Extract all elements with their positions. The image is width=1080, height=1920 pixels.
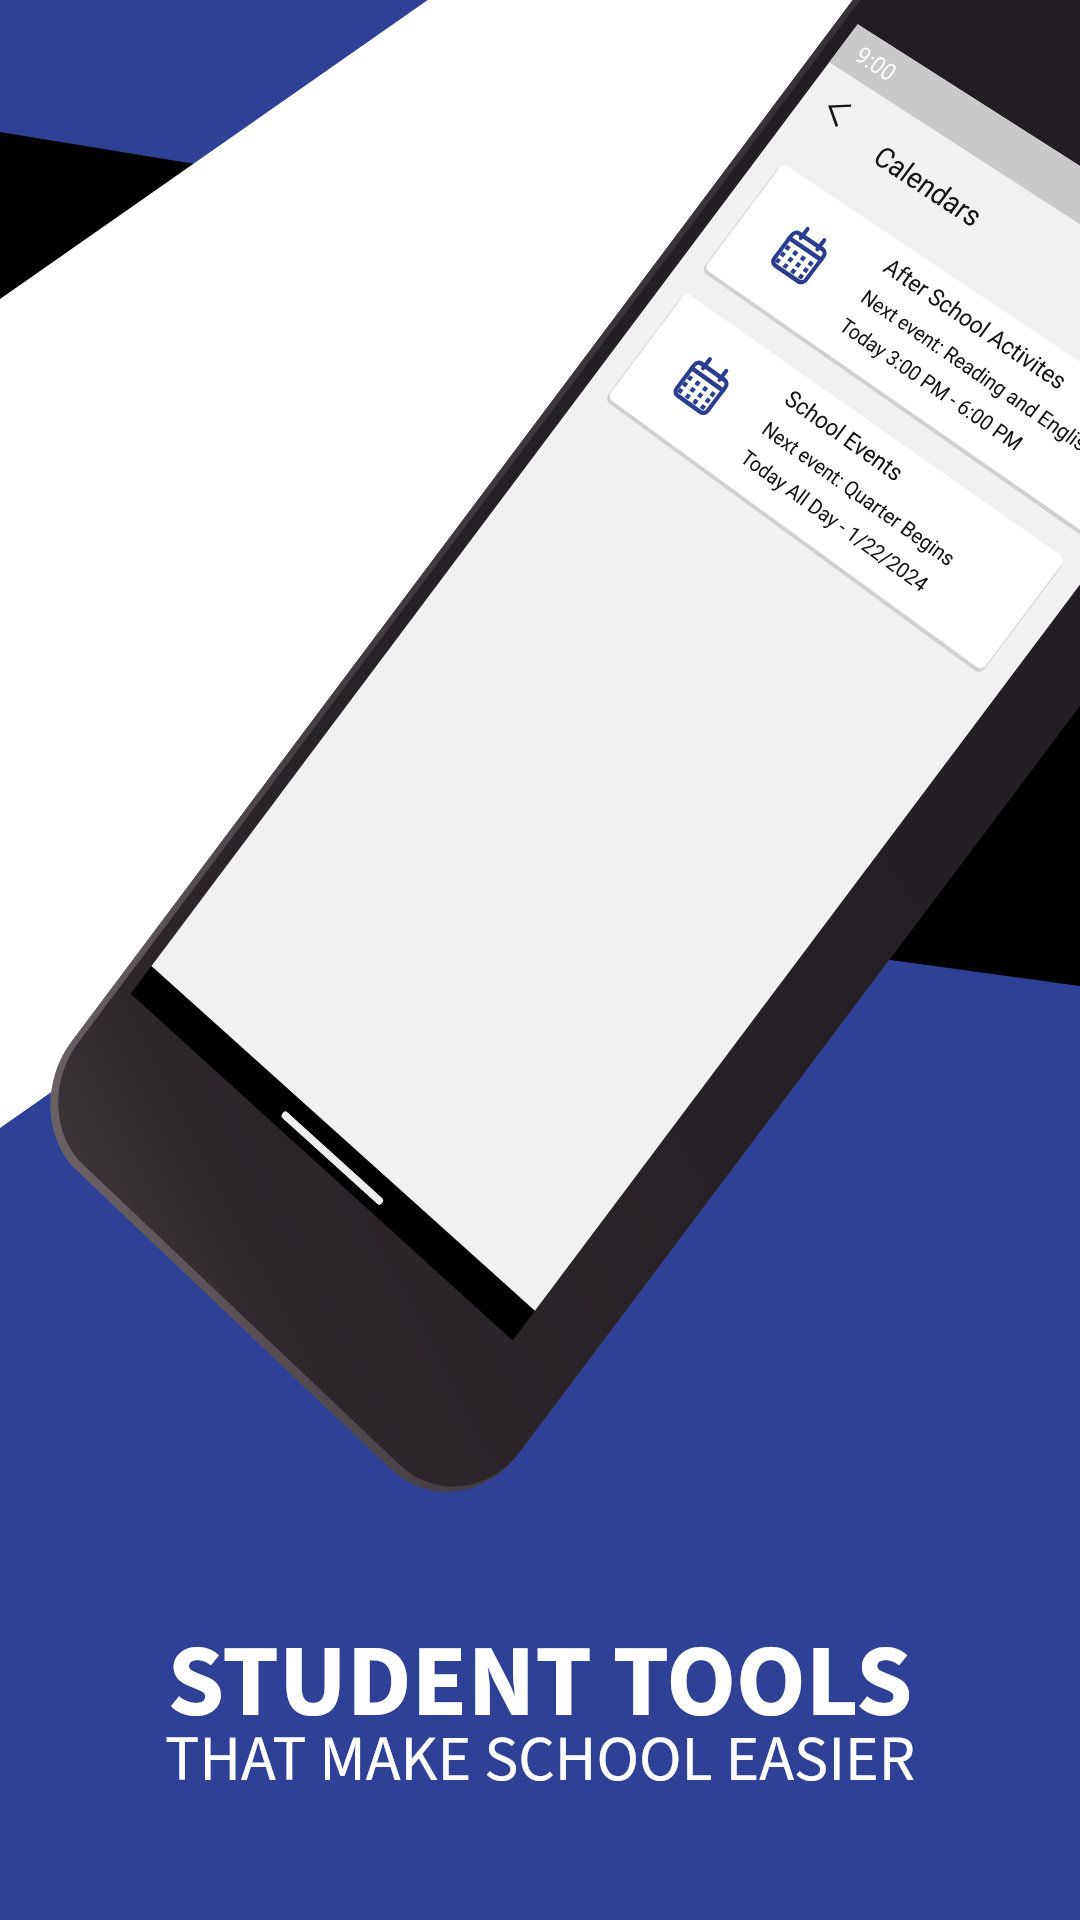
staticText: Next event: Reading and English Tutoring: [856, 286, 1080, 486]
staticText: Today All Day - 1/22/2024: [736, 446, 933, 598]
staticText: 9:00: [850, 41, 902, 87]
staticText: Today 3:00 PM - 6:00 PM: [834, 314, 1027, 457]
staticText: Next event: Quarter Begins: [757, 417, 960, 572]
button[interactable]: After School Activites: [704, 163, 1080, 533]
staticText: School Events: [779, 385, 909, 487]
staticText: THAT MAKE SCHOOL EASIER: [0, 1714, 1080, 1805]
staticText: STUDENT TOOLS: [0, 1611, 1080, 1756]
staticText: After School Activites: [878, 253, 1073, 395]
button[interactable]: School Events: [607, 292, 1066, 671]
staticText: Calendars: [867, 139, 989, 233]
button[interactable]: Back: [806, 80, 870, 141]
